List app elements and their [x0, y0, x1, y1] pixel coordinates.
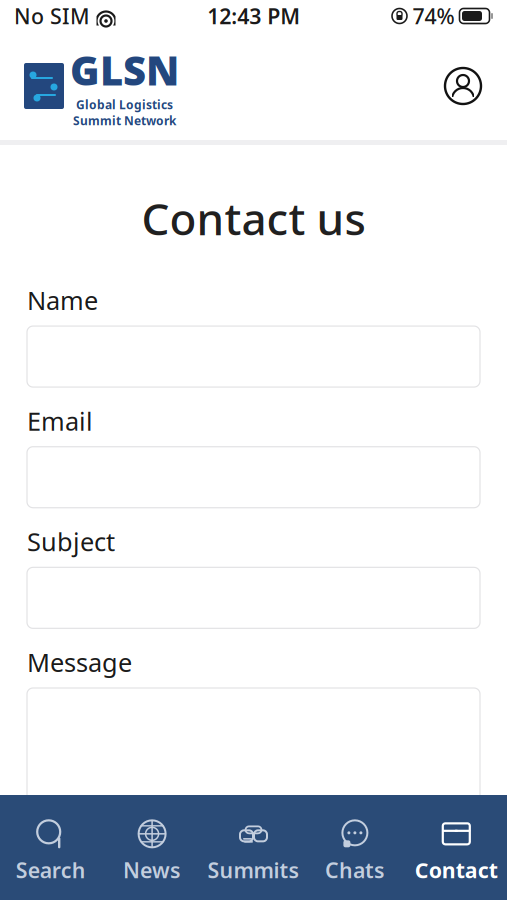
- staticText: Global Logistics: [76, 97, 173, 112]
- staticText: Summits: [207, 856, 299, 884]
- button[interactable]: [27, 567, 480, 628]
- staticText: No SIM: [14, 2, 90, 30]
- staticText: Search: [16, 856, 86, 884]
- button[interactable]: [27, 326, 480, 387]
- button[interactable]: [27, 688, 480, 828]
- button[interactable]: Search: [0, 809, 101, 894]
- button[interactable]: Chats: [304, 809, 406, 894]
- staticText: 12:43 PM: [207, 2, 300, 30]
- staticText: Name: [27, 283, 98, 317]
- button[interactable]: Account: [443, 66, 483, 106]
- staticText: Contact: [415, 856, 498, 884]
- button[interactable]: News: [101, 809, 203, 894]
- staticText: News: [123, 856, 181, 884]
- staticText: Email: [27, 404, 93, 438]
- button[interactable]: GLSN home: [24, 39, 179, 132]
- staticText: Subject: [27, 525, 115, 558]
- staticText: 74%: [412, 2, 454, 30]
- staticText: Chats: [325, 856, 385, 884]
- staticText: Summit Network: [73, 113, 176, 128]
- staticText: GLSN: [70, 43, 179, 97]
- button[interactable]: Contact: [406, 809, 507, 894]
- staticText: Message: [27, 645, 132, 679]
- button[interactable]: Summits: [203, 809, 304, 894]
- staticText: Contact us: [141, 189, 365, 247]
- button[interactable]: [27, 447, 480, 508]
